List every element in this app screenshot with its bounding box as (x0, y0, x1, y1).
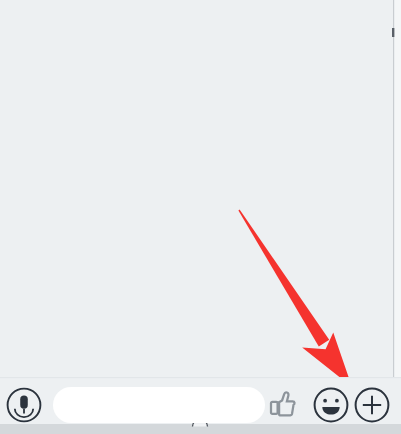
button[interactable]: Emoji (313, 387, 349, 423)
button[interactable]: More options (354, 387, 390, 423)
button[interactable]: Send thumbs up (268, 389, 298, 419)
button[interactable]: Voice message (6, 387, 42, 423)
